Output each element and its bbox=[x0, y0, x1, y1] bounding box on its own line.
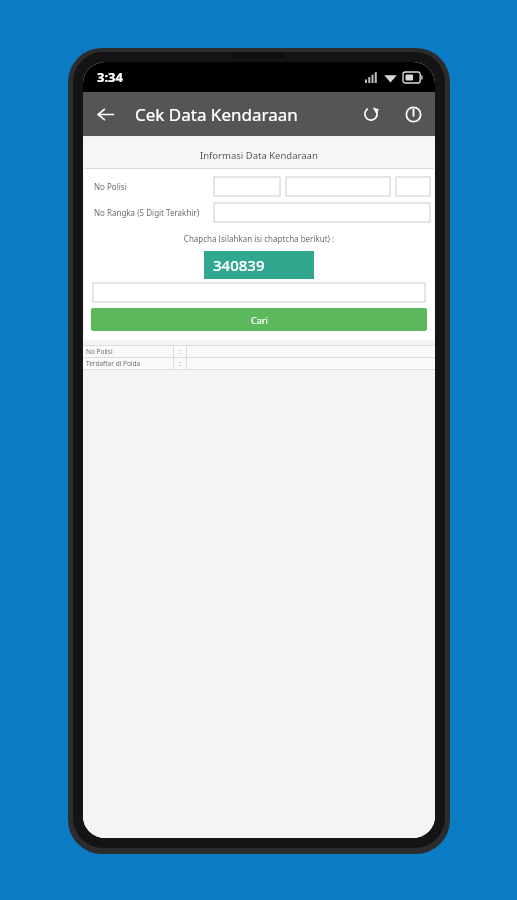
button[interactable] bbox=[396, 177, 430, 196]
button[interactable] bbox=[214, 203, 430, 222]
staticText: : bbox=[179, 347, 181, 356]
button[interactable]: Back bbox=[83, 92, 127, 136]
button[interactable] bbox=[214, 177, 280, 196]
staticText: Chapcha (silahkan isi chaptcha berikut) … bbox=[84, 233, 434, 244]
button[interactable] bbox=[286, 177, 390, 196]
button[interactable]: Refresh bbox=[351, 92, 391, 136]
button[interactable]: Cari bbox=[91, 308, 427, 331]
staticText: 3:34 bbox=[97, 68, 123, 86]
button[interactable]: Power bbox=[391, 92, 435, 136]
button[interactable] bbox=[93, 283, 425, 302]
staticText: No Polisi bbox=[94, 181, 214, 192]
staticText: Terdaftar di Polda bbox=[86, 359, 141, 368]
staticText: Cek Data Kendaraan bbox=[135, 103, 298, 126]
staticText: : bbox=[179, 359, 181, 368]
staticText: 340839 bbox=[213, 255, 265, 275]
staticText: Informasi Data Kendaraan bbox=[200, 149, 318, 162]
staticText: No Rangka (5 Digit Terakhir) bbox=[94, 207, 214, 218]
button[interactable]: 340839 bbox=[204, 251, 314, 279]
staticText: No Polisi bbox=[86, 347, 113, 356]
staticText: Cari bbox=[251, 314, 268, 326]
